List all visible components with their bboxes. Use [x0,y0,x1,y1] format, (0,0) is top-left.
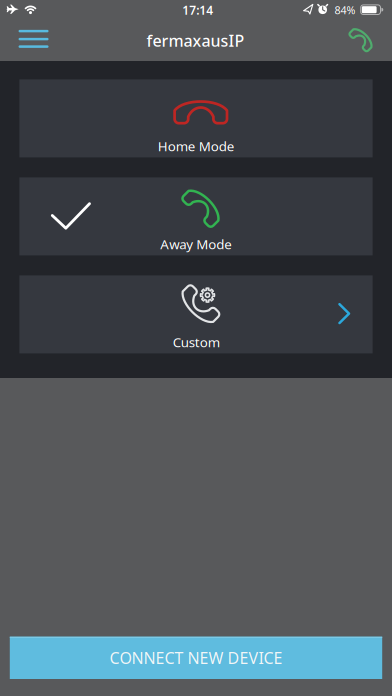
staticText: 84% [334,3,355,17]
button[interactable]: Away Mode [19,177,373,255]
button[interactable]: Custom [19,275,373,353]
button[interactable]: Menu [0,20,67,61]
staticText: CONNECT NEW DEVICE [109,647,282,668]
button[interactable]: Call [340,18,384,59]
staticText: Home Mode [158,137,235,155]
button[interactable]: Home Mode [19,79,373,157]
button[interactable]: CONNECT NEW DEVICE [10,637,382,679]
staticText: Away Mode [160,235,232,253]
staticText: Custom [173,333,220,351]
staticText: 17:14 [182,2,213,18]
staticText: fermaxausIP [146,30,244,51]
